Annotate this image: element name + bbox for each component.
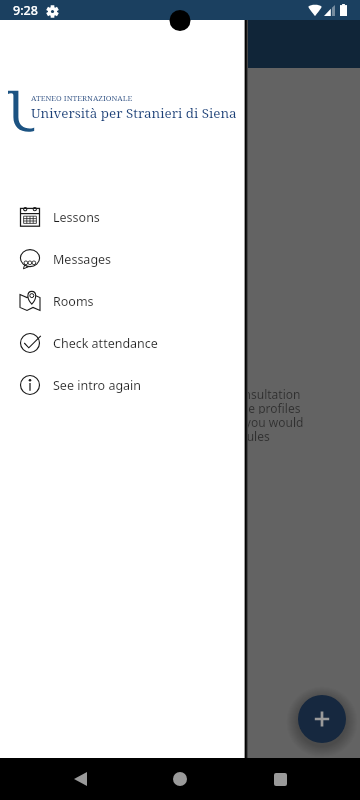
button[interactable]: Add — [298, 695, 346, 743]
staticText: 9:28 — [13, 2, 38, 19]
button[interactable]: Rooms — [0, 280, 243, 322]
staticText: Pick who you would — [192, 414, 304, 428]
staticText: ATENEO INTERNAZIONALE — [31, 93, 133, 103]
staticText: the schedules — [192, 428, 270, 442]
staticText: Lessons — [53, 209, 100, 226]
staticText: Take a consultation — [192, 386, 301, 400]
button[interactable]: Lessons — [0, 196, 243, 238]
button[interactable]: Check attendance — [0, 322, 243, 364]
staticText: See intro again — [53, 377, 142, 394]
staticText: Check attendance — [53, 335, 158, 352]
staticText: Rooms — [53, 293, 94, 310]
button[interactable]: Recents — [260, 759, 300, 799]
button[interactable]: See intro again — [0, 364, 243, 406]
button[interactable]: Back — [60, 759, 100, 799]
staticText: Università per Stranieri di Siena — [31, 104, 237, 122]
staticText: Browse the profiles — [192, 400, 301, 414]
staticText: Messages — [53, 251, 112, 268]
button[interactable]: Messages — [0, 238, 243, 280]
button[interactable]: Home — [160, 759, 200, 799]
